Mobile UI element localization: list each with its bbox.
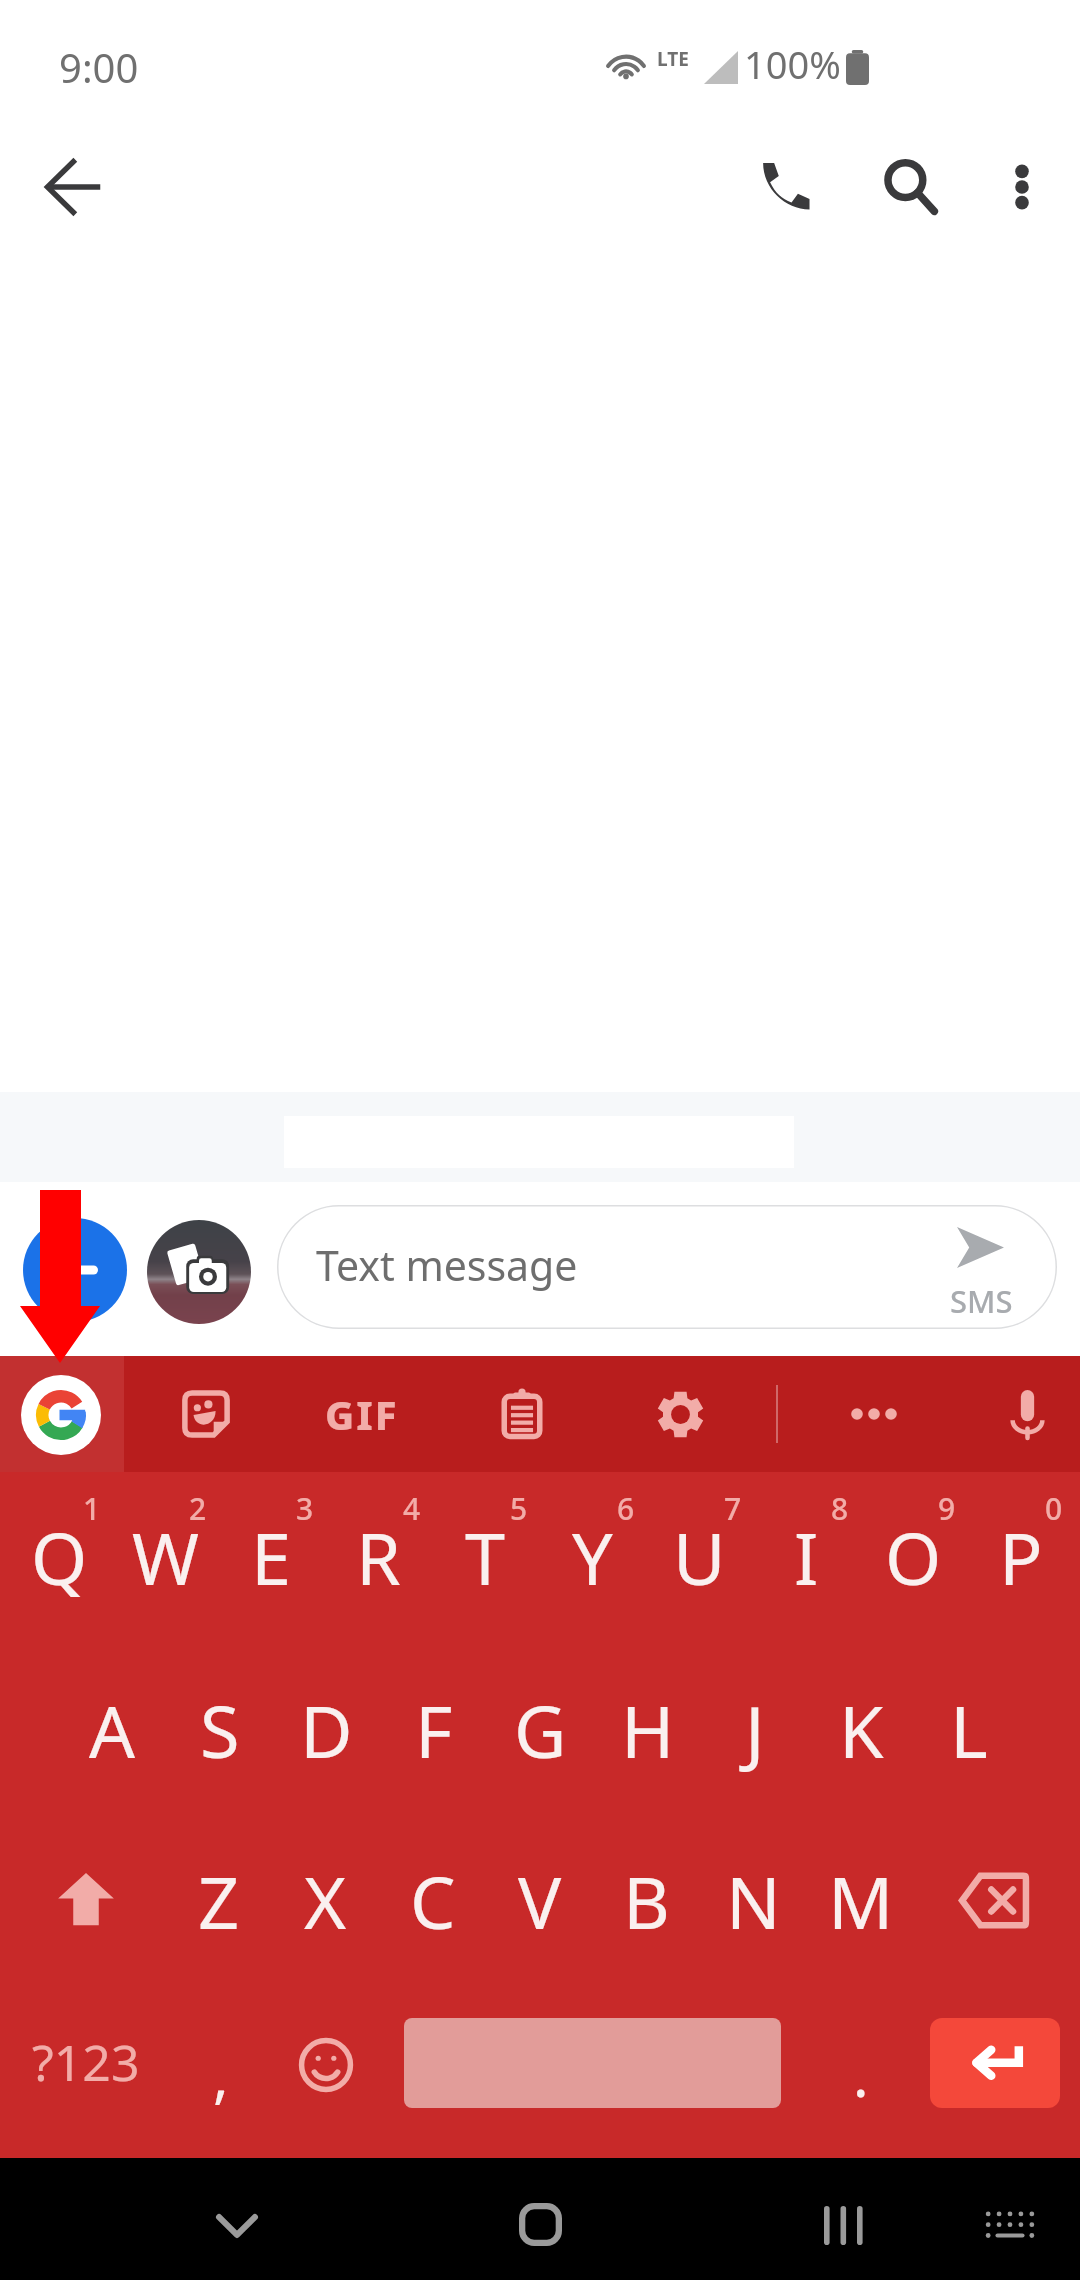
button[interactable]: M xyxy=(807,1815,914,1987)
staticText: 3 xyxy=(296,1488,314,1529)
button[interactable]: D xyxy=(273,1644,380,1816)
button[interactable]: Text message xyxy=(277,1205,1057,1329)
button[interactable]: G xyxy=(487,1644,594,1816)
button[interactable]: C xyxy=(379,1815,486,1987)
button[interactable]: 5 xyxy=(432,1472,539,1644)
staticText: T xyxy=(465,1508,506,1606)
staticText: N xyxy=(726,1852,781,1950)
staticText: 5 xyxy=(510,1488,528,1529)
button[interactable]: 2 xyxy=(112,1472,218,1644)
staticText: ?123 xyxy=(32,2028,140,2096)
button[interactable]: . xyxy=(805,1987,915,2159)
staticText: Y xyxy=(572,1508,613,1606)
staticText: Q xyxy=(31,1508,88,1606)
button[interactable]: K xyxy=(808,1644,915,1816)
button[interactable]: H xyxy=(594,1644,701,1816)
staticText: 1 xyxy=(83,1488,101,1529)
button[interactable]: Google search xyxy=(0,1356,124,1472)
button[interactable]: N xyxy=(700,1815,807,1987)
button[interactable]: 8 xyxy=(753,1472,860,1644)
button[interactable]: More xyxy=(816,1356,932,1472)
button[interactable]: Emoji xyxy=(268,1987,383,2159)
button[interactable]: Back xyxy=(25,139,121,235)
button[interactable]: F xyxy=(380,1644,487,1816)
staticText: H xyxy=(621,1681,675,1779)
staticText: S xyxy=(200,1681,240,1779)
staticText: G xyxy=(514,1681,567,1779)
button[interactable]: Call xyxy=(736,136,832,232)
button[interactable]: L xyxy=(915,1644,1022,1816)
button[interactable]: 0 xyxy=(967,1472,1074,1644)
staticText: A xyxy=(89,1681,136,1779)
staticText: I xyxy=(794,1508,819,1606)
button[interactable]: 4 xyxy=(325,1472,432,1644)
staticText: L xyxy=(950,1681,988,1779)
staticText: J xyxy=(745,1681,765,1779)
staticText: GIF xyxy=(325,1387,399,1441)
staticText: D xyxy=(300,1681,353,1779)
button[interactable]: S xyxy=(166,1644,273,1816)
staticText: LTE xyxy=(657,46,689,72)
button[interactable]: 3 xyxy=(218,1472,325,1644)
button[interactable]: J xyxy=(701,1644,808,1816)
button[interactable]: B xyxy=(593,1815,700,1987)
staticText: C xyxy=(410,1852,456,1950)
staticText: 8 xyxy=(831,1488,849,1529)
button[interactable]: Settings xyxy=(622,1356,738,1472)
staticText: B xyxy=(623,1852,670,1950)
staticText: 100% xyxy=(744,38,841,90)
staticText: W xyxy=(132,1508,199,1606)
button[interactable]: Stickers xyxy=(148,1356,264,1472)
button[interactable]: Enter xyxy=(930,2018,1060,2108)
button[interactable]: , xyxy=(170,1987,265,2159)
button[interactable]: X xyxy=(272,1815,379,1987)
staticText: X xyxy=(304,1852,347,1950)
button[interactable]: Hide keyboard xyxy=(177,2165,297,2280)
staticText: Text message xyxy=(316,1237,578,1293)
button[interactable]: A xyxy=(59,1644,166,1816)
button[interactable]: Voice input xyxy=(969,1356,1080,1472)
staticText: E xyxy=(251,1508,292,1606)
staticText: F xyxy=(415,1681,453,1779)
staticText: . xyxy=(853,2035,869,2114)
button[interactable]: Clipboard xyxy=(464,1356,580,1472)
button[interactable]: Backspace xyxy=(914,1815,1080,1987)
staticText: P xyxy=(999,1508,1043,1606)
button[interactable]: Add attachment xyxy=(23,1218,127,1322)
button[interactable]: GIF xyxy=(302,1356,422,1472)
staticText: SMS xyxy=(950,1280,1013,1322)
button[interactable]: Home xyxy=(480,2163,600,2280)
staticText: 9 xyxy=(938,1488,956,1529)
button[interactable]: Camera xyxy=(147,1220,251,1324)
staticText: 4 xyxy=(403,1488,421,1529)
button[interactable]: Recent apps xyxy=(781,2164,901,2280)
staticText: K xyxy=(839,1681,884,1779)
button[interactable]: 7 xyxy=(646,1472,753,1644)
button[interactable]: 6 xyxy=(539,1472,646,1644)
button[interactable]: Z xyxy=(165,1815,272,1987)
staticText: V xyxy=(518,1852,562,1950)
staticText: 6 xyxy=(617,1488,635,1529)
staticText: , xyxy=(213,2035,229,2114)
button[interactable]: More options xyxy=(974,139,1070,235)
button[interactable]: Shift xyxy=(0,1815,165,1987)
staticText: M xyxy=(828,1852,894,1950)
staticText: O xyxy=(885,1508,942,1606)
button[interactable]: ?123 xyxy=(0,1987,170,2159)
staticText: R xyxy=(356,1508,401,1606)
button[interactable]: 1 xyxy=(6,1472,112,1644)
staticText: 7 xyxy=(724,1488,742,1529)
button[interactable]: Space xyxy=(404,2018,781,2108)
staticText: 9:00 xyxy=(59,40,139,94)
staticText: U xyxy=(673,1508,726,1606)
staticText: Z xyxy=(198,1852,240,1950)
button[interactable]: Search xyxy=(862,139,958,235)
staticText: 2 xyxy=(189,1488,207,1529)
staticText: 0 xyxy=(1045,1488,1063,1529)
button[interactable]: 9 xyxy=(860,1472,967,1644)
button[interactable]: Switch keyboard xyxy=(950,2164,1070,2280)
button[interactable]: V xyxy=(486,1815,593,1987)
